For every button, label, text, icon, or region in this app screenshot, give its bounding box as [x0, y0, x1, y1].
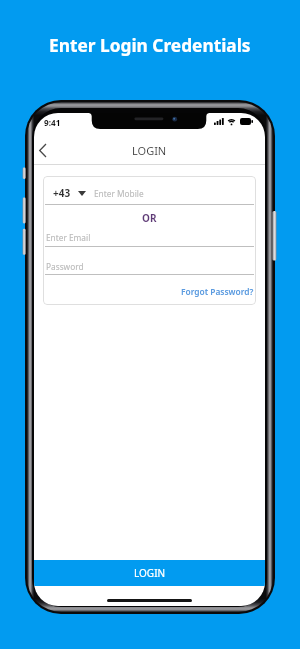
button[interactable]: +43	[43, 176, 256, 204]
button[interactable]: Enter Email	[43, 228, 256, 246]
staticText: OR	[142, 211, 157, 225]
staticText: Password	[46, 261, 84, 272]
staticText: Enter Email	[46, 232, 91, 243]
staticText: +43	[53, 186, 71, 200]
button[interactable]: LOGIN	[34, 560, 265, 586]
button[interactable]: Password	[43, 247, 256, 274]
button[interactable]: Forgot Password?	[181, 286, 254, 297]
button[interactable]: Back	[34, 139, 53, 161]
staticText: LOGIN	[134, 566, 166, 580]
staticText: Enter Login Credentials	[49, 34, 251, 58]
staticText: 9:41	[44, 117, 61, 128]
staticText: LOGIN	[132, 143, 167, 158]
staticText: Enter Mobile	[94, 188, 144, 199]
